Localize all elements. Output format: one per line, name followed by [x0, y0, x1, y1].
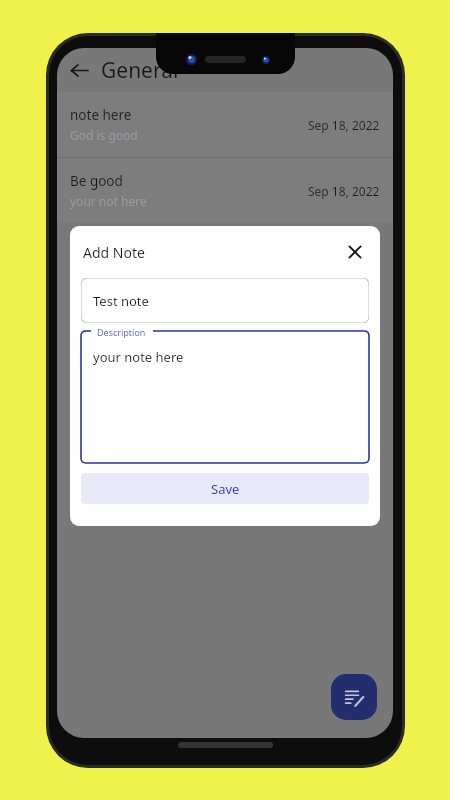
staticText: Be good [70, 172, 123, 190]
staticText: God is good [70, 127, 138, 143]
staticText: Test note [93, 292, 149, 310]
staticText: Description [97, 326, 146, 338]
staticText: your note here [93, 348, 184, 366]
staticText: Save [211, 480, 240, 498]
staticText: note here [70, 106, 132, 124]
staticText: Sep 18, 2022 [308, 117, 380, 133]
button[interactable]: note here [57, 92, 393, 157]
staticText: Sep 18, 2022 [308, 183, 380, 199]
staticText: General [101, 56, 179, 85]
button[interactable]: Add note [331, 674, 377, 720]
button[interactable]: Test note [81, 278, 369, 323]
button[interactable]: Save [81, 473, 369, 504]
button[interactable]: Be good [57, 158, 393, 223]
button[interactable]: Close [338, 235, 372, 269]
button[interactable]: Back [57, 48, 101, 92]
staticText: Add Note [83, 243, 145, 262]
button[interactable]: Description [81, 331, 369, 463]
staticText: your not here [70, 193, 147, 209]
